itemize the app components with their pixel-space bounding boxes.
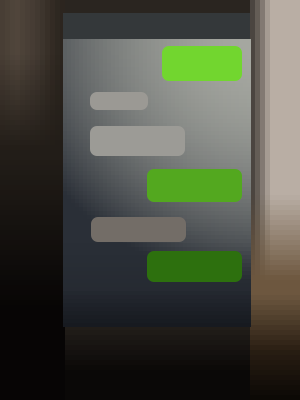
button[interactable]: Received message: [91, 217, 186, 242]
button[interactable]: Received message: [90, 92, 148, 110]
button[interactable]: Received message: [90, 126, 185, 156]
button[interactable]: Sent message: [162, 46, 242, 81]
button[interactable]: Sent message: [147, 169, 242, 202]
button[interactable]: Sent message: [147, 251, 242, 282]
